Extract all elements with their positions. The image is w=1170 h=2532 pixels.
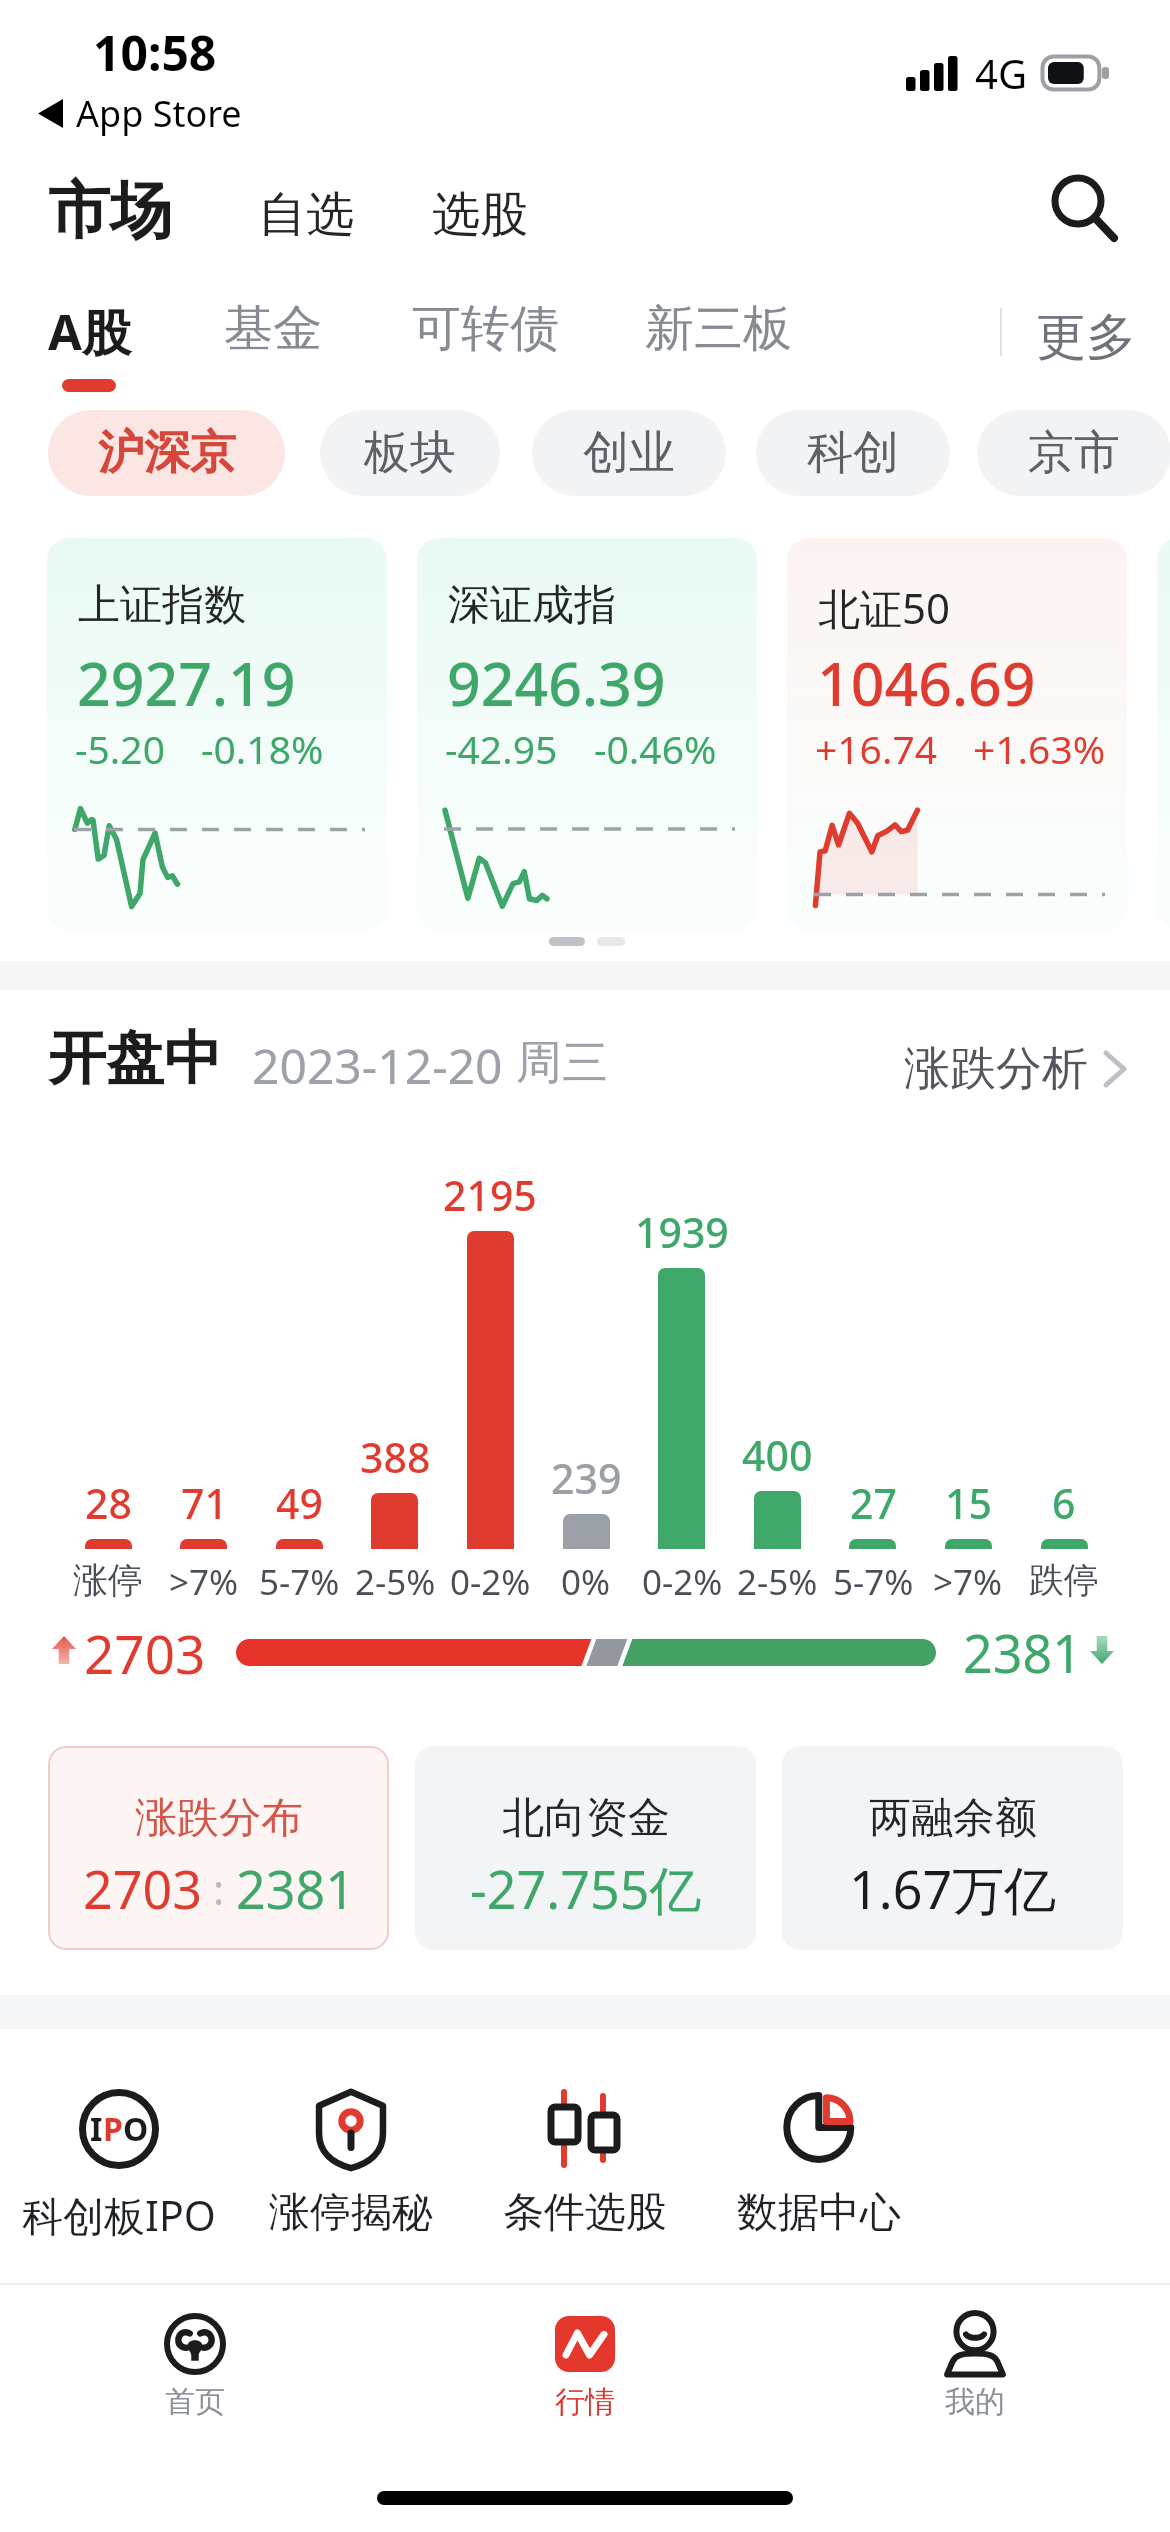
button[interactable]: >7% 15 — [921, 1160, 1017, 1600]
button[interactable]: 创业板指 — [1157, 538, 1170, 930]
staticText: 行情 — [555, 2383, 615, 2421]
button[interactable]: 深证成指 — [417, 538, 757, 930]
button[interactable]: 0% 239 — [538, 1160, 634, 1600]
button[interactable]: 沪深京 — [48, 410, 285, 496]
button[interactable]: 0-2% 1939 — [634, 1160, 730, 1600]
staticText: 6 — [1052, 1475, 1076, 1531]
button[interactable]: 0-2% 2195 — [443, 1160, 539, 1600]
staticText: 更多 — [1036, 306, 1136, 369]
button[interactable]: 可转债 — [412, 298, 559, 360]
button[interactable]: Back to App Store — [38, 89, 242, 138]
staticText: 49 — [276, 1475, 323, 1531]
staticText: 京市 — [1028, 424, 1120, 482]
staticText: 可转债 — [412, 298, 559, 360]
button[interactable]: 京市 — [977, 410, 1170, 496]
button[interactable]: 涨停 28 — [60, 1160, 156, 1600]
staticText: 2703 — [84, 1617, 206, 1689]
button[interactable]: 涨跌分布 — [48, 1746, 389, 1950]
staticText: 5-7% — [259, 1558, 340, 1606]
staticText: 2703 — [83, 1853, 202, 1924]
staticText: 市场 — [48, 172, 172, 250]
staticText: 跌停 — [1029, 1558, 1099, 1602]
staticText: 上证指数 — [78, 579, 246, 632]
staticText: +1.63% — [973, 722, 1106, 775]
staticText: 0-2% — [450, 1558, 531, 1606]
staticText: : — [202, 1860, 236, 1917]
staticText: 涨跌分布 — [135, 1792, 303, 1845]
button[interactable]: 北证50 — [787, 538, 1127, 930]
staticText: 4G — [975, 46, 1027, 100]
staticText: 沪深京 — [98, 424, 236, 482]
button[interactable]: A股 — [48, 298, 131, 365]
staticText: 周三 — [516, 1034, 608, 1092]
button[interactable]: 选股 — [432, 185, 528, 245]
button[interactable]: 市场 — [48, 172, 172, 250]
staticText: 新三板 — [645, 298, 792, 360]
button[interactable]: 行情 — [390, 2300, 780, 2480]
staticText: 科创板IPO — [22, 2187, 216, 2243]
staticText: 0% — [561, 1558, 611, 1606]
button[interactable]: >7% 71 — [156, 1160, 252, 1600]
button[interactable]: 科创 — [756, 410, 950, 496]
staticText: 2-5% — [737, 1558, 818, 1606]
staticText: 创业 — [583, 424, 675, 482]
staticText: A股 — [48, 298, 131, 365]
staticText: 1939 — [635, 1204, 729, 1260]
button[interactable]: Search — [1042, 168, 1126, 252]
staticText: 28 — [85, 1475, 132, 1531]
button[interactable]: 数据中心 — [702, 2089, 936, 2289]
staticText: O — [123, 2107, 149, 2151]
staticText: 239 — [551, 1450, 622, 1506]
button[interactable]: 我的 — [780, 2300, 1170, 2480]
button[interactable]: 北向资金 — [415, 1746, 756, 1950]
staticText: 2023-12-20 — [252, 1033, 503, 1098]
staticText: 我的 — [945, 2383, 1005, 2421]
staticText: 10:58 — [93, 20, 217, 85]
staticText: -0.46% — [594, 722, 717, 775]
button[interactable]: 2-5% 400 — [729, 1160, 825, 1600]
button[interactable]: 更多 — [1036, 306, 1136, 369]
button[interactable]: 5-7% 27 — [825, 1160, 921, 1600]
staticText: -27.755亿 — [470, 1853, 702, 1924]
staticText: -0.18% — [201, 722, 324, 775]
button[interactable]: 涨跌分析 — [904, 1040, 1128, 1098]
staticText: 1.67万亿 — [849, 1853, 1057, 1924]
staticText: 2381 — [963, 1617, 1082, 1688]
button[interactable]: 跌停 6 — [1016, 1160, 1112, 1600]
staticText: 15 — [945, 1475, 992, 1531]
button[interactable]: 两融余额 — [782, 1746, 1123, 1950]
staticText: >7% — [169, 1558, 239, 1606]
staticText: 板块 — [364, 424, 456, 482]
button[interactable]: 条件选股 — [468, 2089, 702, 2289]
button[interactable]: I — [2, 2089, 236, 2289]
staticText: +16.74 — [815, 722, 937, 775]
button[interactable]: 上证指数 — [47, 538, 387, 930]
staticText: 首页 — [165, 2383, 225, 2421]
staticText: 深证成指 — [448, 579, 616, 632]
button[interactable]: 2-5% 388 — [347, 1160, 443, 1600]
staticText: 选股 — [432, 185, 528, 245]
staticText: P — [103, 2107, 123, 2151]
button[interactable]: 5-7% 49 — [251, 1160, 347, 1600]
staticText: App Store — [76, 89, 242, 138]
staticText: 两融余额 — [869, 1792, 1037, 1845]
staticText: -5.20 — [75, 722, 165, 775]
staticText: 基金 — [224, 298, 322, 360]
button[interactable]: 新三板 — [645, 298, 792, 360]
button[interactable]: 自选 — [258, 185, 354, 245]
staticText: 涨跌分析 — [904, 1040, 1088, 1098]
button[interactable]: 涨停揭秘 — [234, 2089, 468, 2289]
staticText: 北证50 — [818, 579, 951, 636]
staticText: 2195 — [443, 1167, 537, 1223]
staticText: 27 — [850, 1475, 897, 1531]
button[interactable]: 创业 — [532, 410, 726, 496]
staticText: I — [90, 2107, 103, 2151]
staticText: 2381 — [236, 1853, 355, 1924]
staticText: 5-7% — [833, 1558, 914, 1606]
staticText: 0-2% — [642, 1558, 723, 1606]
staticText: 北向资金 — [502, 1792, 670, 1845]
staticText: >7% — [933, 1558, 1003, 1606]
button[interactable]: 首页 — [0, 2300, 390, 2480]
button[interactable]: 板块 — [320, 410, 500, 496]
button[interactable]: 基金 — [224, 298, 322, 360]
